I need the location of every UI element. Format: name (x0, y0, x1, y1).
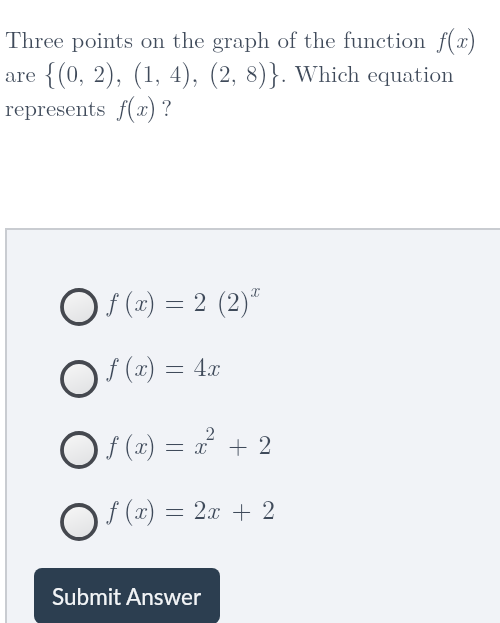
staticText: Submit Answer (52, 583, 202, 610)
button[interactable] (54, 497, 104, 547)
staticText: f (x) = 2x + 2 (107, 490, 276, 527)
button[interactable] (54, 425, 104, 475)
staticText: f (x) = 4x (107, 347, 219, 384)
staticText: f (x) = 2 (2)x (107, 276, 259, 318)
button[interactable] (54, 354, 104, 404)
button[interactable] (54, 282, 104, 332)
button[interactable]: Submit Answer (34, 568, 220, 623)
staticText: Three points on the graph of the functio… (5, 19, 477, 124)
staticText: f (x) = x2 + 2 (107, 419, 272, 461)
